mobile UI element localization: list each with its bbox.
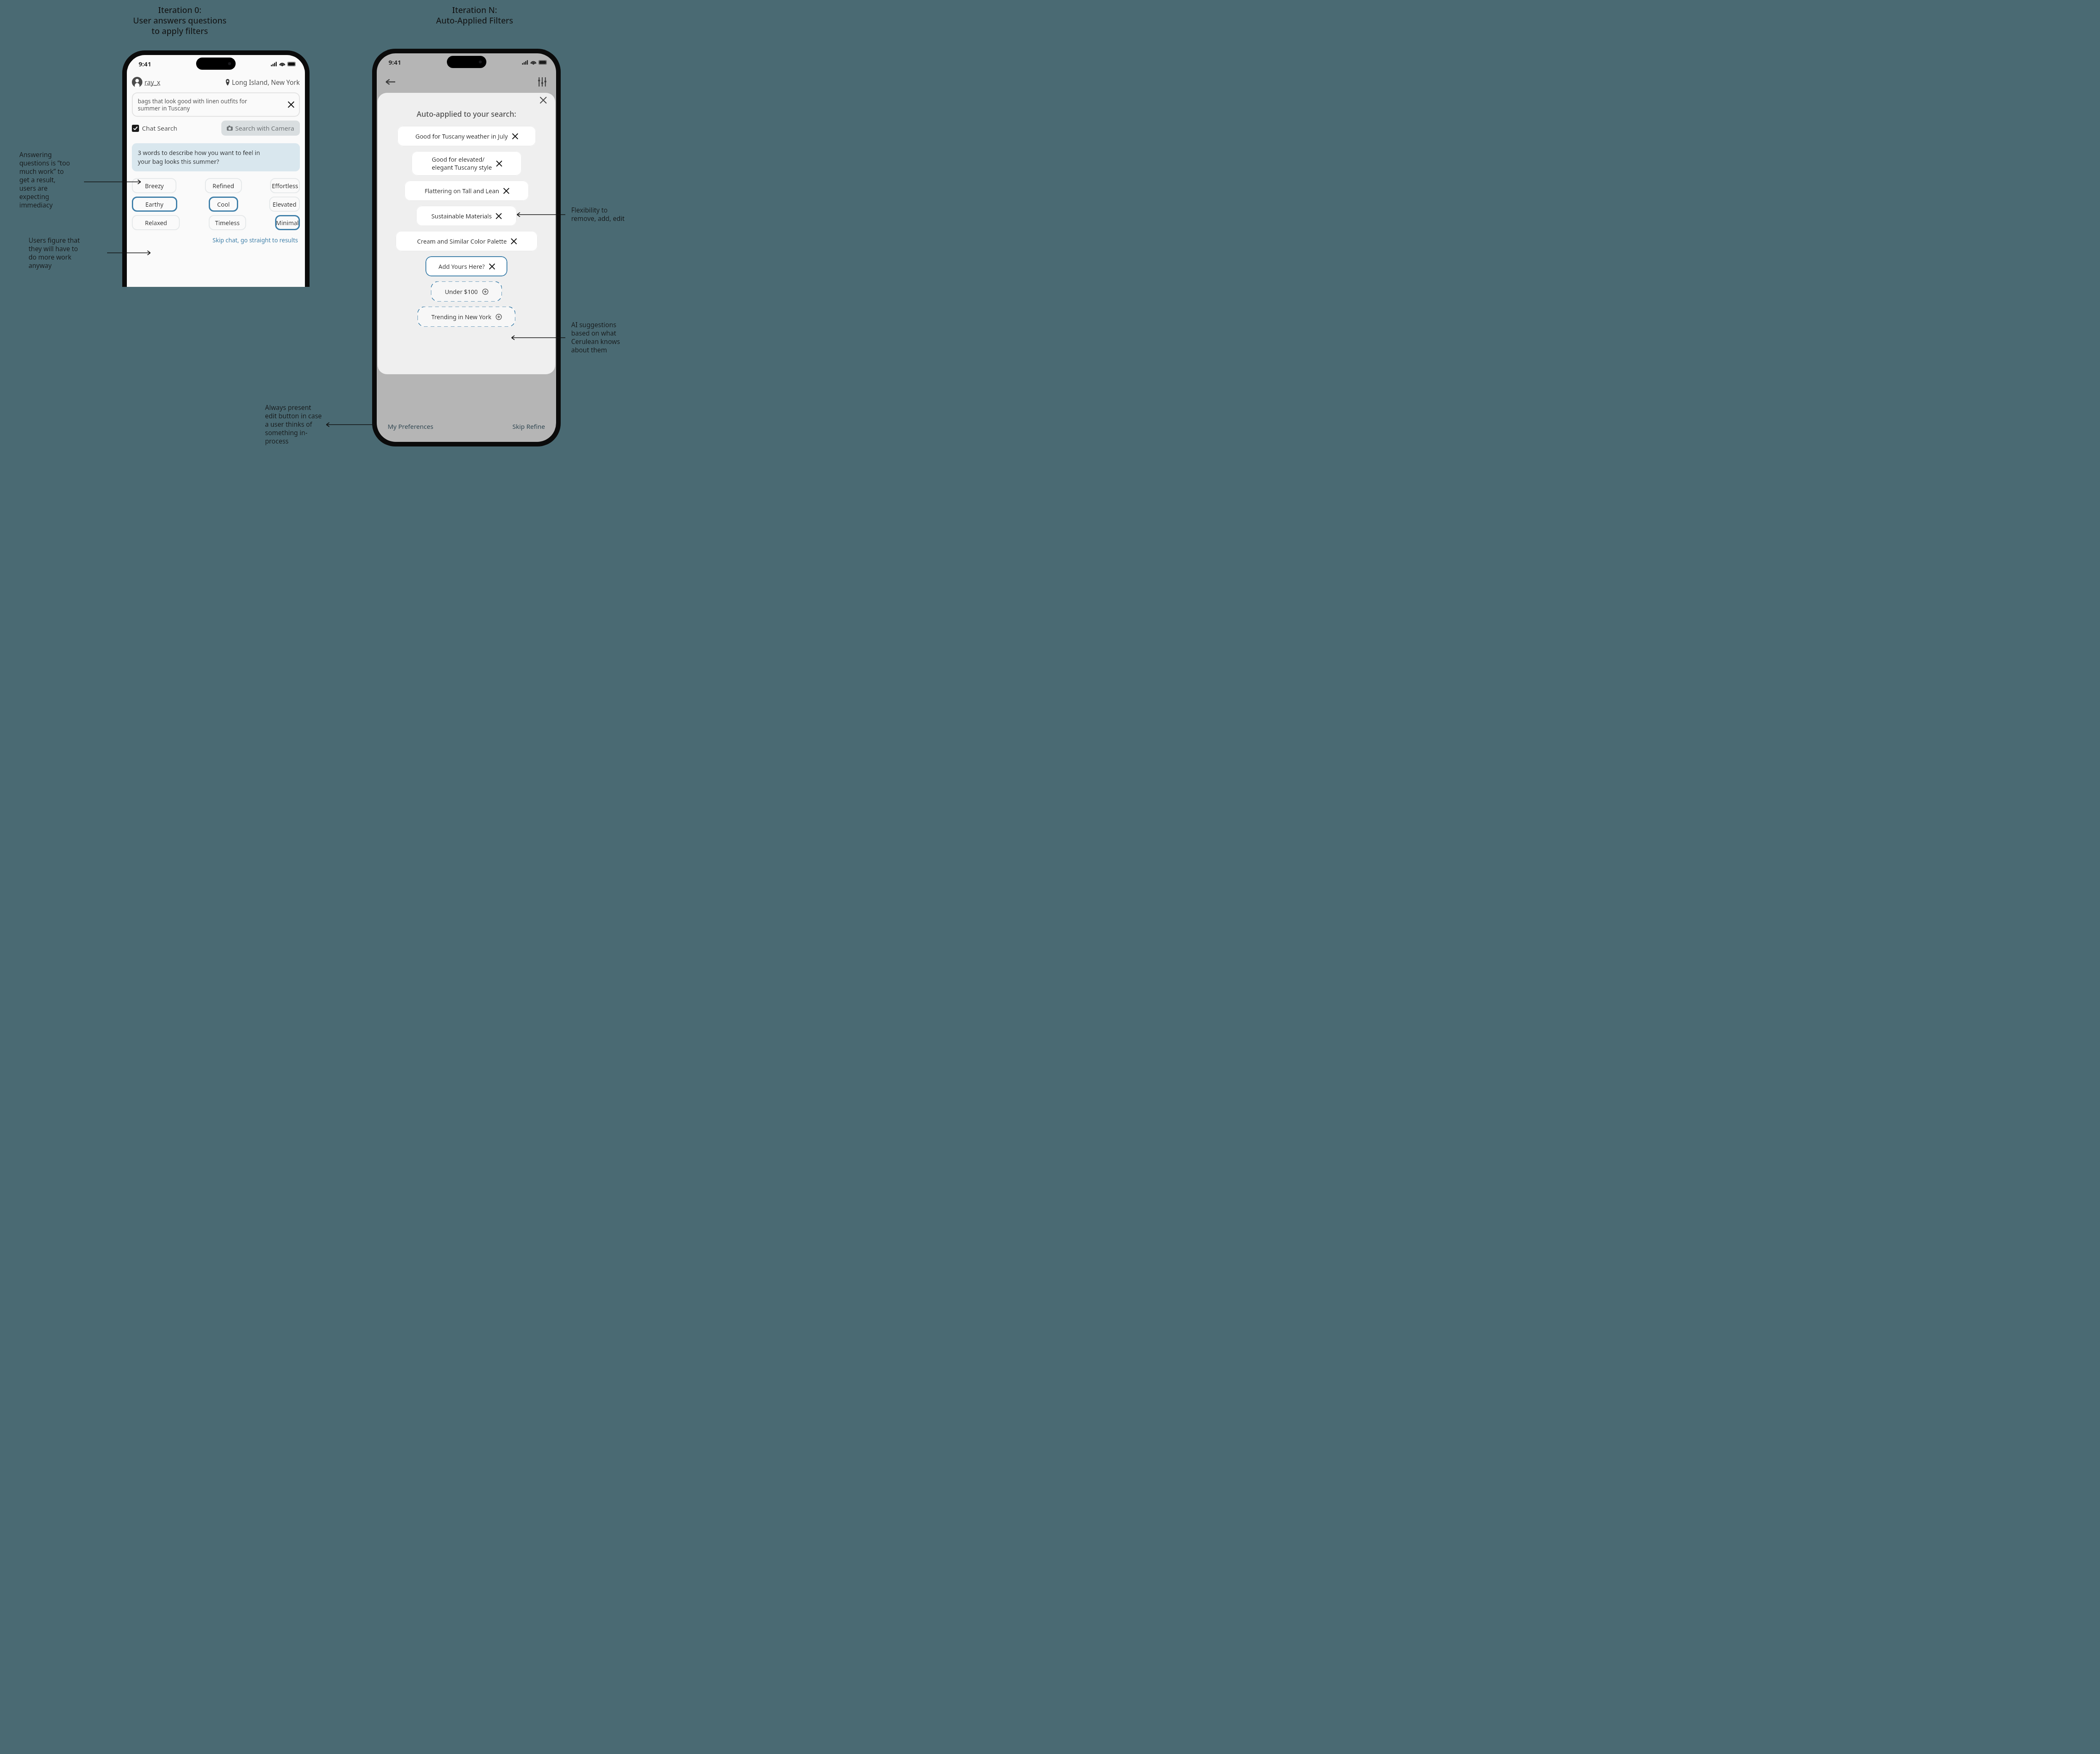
staticText: Search with Camera	[235, 124, 294, 132]
staticText: Breezy	[145, 182, 164, 190]
button[interactable]: Good for elevated/ elegant Tuscany style	[412, 151, 522, 176]
staticText: Cool	[217, 200, 230, 208]
button[interactable]: Earthy	[132, 197, 177, 212]
staticText: Trending in New York	[431, 313, 491, 321]
button[interactable]: Refined	[205, 178, 242, 193]
button[interactable]: Relaxed	[132, 215, 180, 230]
staticText: Under $100	[445, 288, 478, 296]
button[interactable]: Cool	[209, 197, 238, 212]
staticText: 9:41	[388, 58, 401, 66]
staticText: Users figure that they will have to do m…	[29, 236, 113, 270]
staticText: bags that look good with linen outfits f…	[138, 97, 288, 112]
staticText: Effortless	[272, 182, 298, 190]
staticText: Always present edit button in case a use…	[265, 403, 349, 446]
button[interactable]: Sustainable Materials	[416, 206, 517, 226]
button[interactable]: Good for Tuscany weather in July	[397, 126, 536, 146]
staticText: AI suggestions based on what Cerulean kn…	[571, 320, 655, 354]
button[interactable]: Effortless	[270, 178, 300, 193]
button[interactable]: My Preferences	[388, 422, 433, 431]
staticText: Good for elevated/ elegant Tuscany style	[432, 155, 492, 171]
staticText: Minimal	[276, 219, 299, 227]
button[interactable]: Flattering on Tall and Lean	[404, 181, 529, 201]
staticText: Iteration N: Auto-Applied Filters	[412, 4, 538, 26]
staticText: Iteration 0: User answers questions to a…	[117, 4, 243, 36]
button[interactable]: Add Yours Here?	[425, 256, 507, 276]
staticText: Cream and Similar Color Palette	[417, 237, 507, 245]
staticText: ray_x	[144, 78, 160, 87]
staticText: Flattering on Tall and Lean	[425, 187, 499, 195]
staticText: Earthy	[145, 200, 164, 208]
button[interactable]: Timeless	[209, 215, 246, 230]
button[interactable]: Filters	[536, 76, 549, 88]
staticText: 9:41	[139, 60, 151, 68]
button[interactable]: Cream and Similar Color Palette	[396, 231, 538, 251]
button[interactable]: Trending in New York	[417, 307, 515, 327]
staticText: Long Island, New York	[232, 78, 300, 87]
button[interactable]: Chat Search	[132, 122, 177, 134]
button[interactable]: Close	[538, 95, 549, 105]
staticText: Good for Tuscany weather in July	[415, 132, 508, 140]
button[interactable]: Search with Camera	[221, 121, 300, 136]
staticText: Flexibility to remove, add, edit	[571, 205, 655, 223]
staticText: Timeless	[215, 219, 240, 227]
button[interactable]: ray_x	[132, 77, 160, 87]
staticText: Auto-applied to your search:	[378, 109, 555, 119]
staticText: 3 words to describe how you want to feel…	[138, 149, 260, 166]
staticText: Answering questions is “too much work” t…	[19, 150, 108, 210]
staticText: Chat Search	[142, 124, 177, 132]
staticText: Relaxed	[145, 219, 167, 227]
staticText: Add Yours Here?	[438, 263, 485, 270]
button[interactable]: Minimal	[275, 215, 300, 230]
button[interactable]: Elevated	[269, 197, 300, 212]
button[interactable]: Skip chat, go straight to results	[213, 236, 300, 244]
staticText: Sustainable Materials	[431, 212, 492, 220]
button[interactable]: bags that look good with linen outfits f…	[132, 92, 300, 117]
staticText: Refined	[213, 182, 234, 190]
button[interactable]: Skip Refine	[512, 422, 545, 431]
staticText: Elevated	[273, 200, 297, 208]
button[interactable]: Back	[384, 76, 397, 88]
button[interactable]: Under $100	[431, 281, 502, 302]
button[interactable]: Breezy	[132, 178, 176, 193]
button[interactable]: Long Island, New York	[225, 78, 300, 87]
